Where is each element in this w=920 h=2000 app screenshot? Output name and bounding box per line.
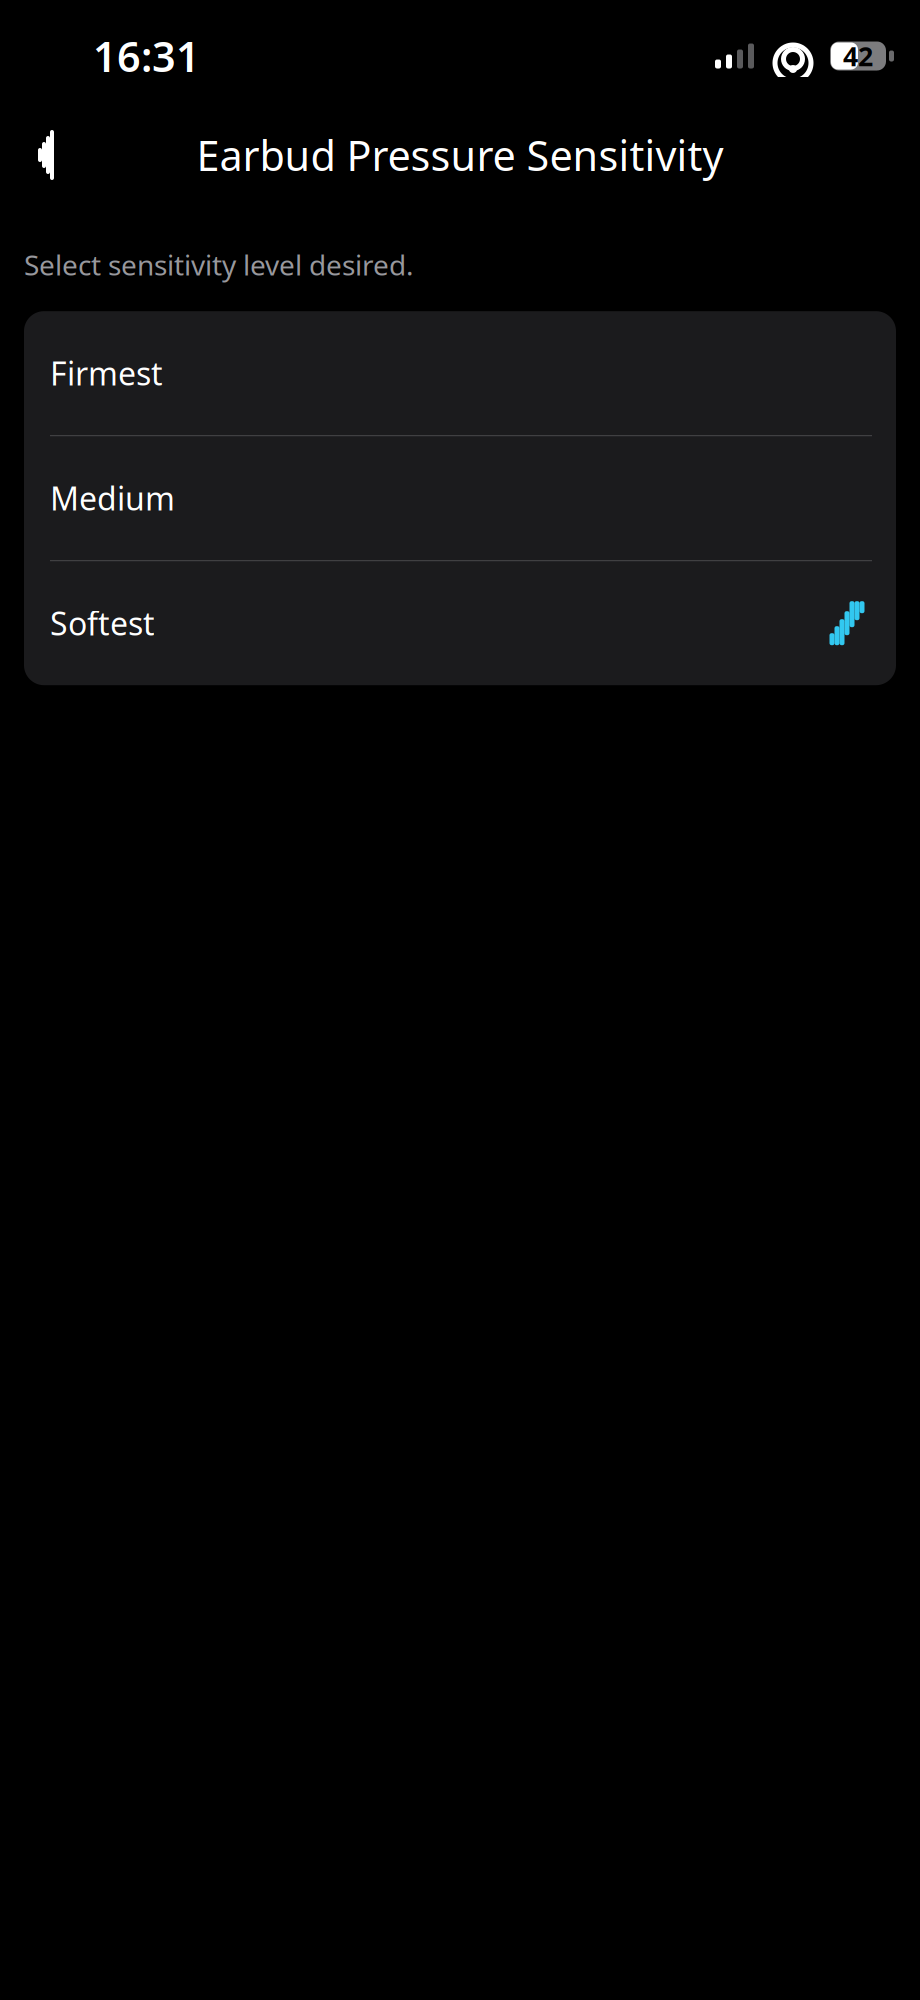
staticText: Softest: [50, 602, 155, 644]
staticText: Select sensitivity level desired.: [24, 246, 414, 283]
staticText: 42: [843, 38, 873, 74]
staticText: Medium: [50, 477, 175, 519]
staticText: Firmest: [50, 352, 163, 394]
button[interactable]: Medium: [24, 436, 896, 561]
button[interactable]: Firmest: [24, 311, 896, 436]
button[interactable]: Back: [4, 113, 88, 197]
staticText: Earbud Pressure Sensitivity: [196, 128, 723, 182]
staticText: 16:31: [93, 29, 200, 83]
button[interactable]: Softest: [24, 561, 896, 685]
